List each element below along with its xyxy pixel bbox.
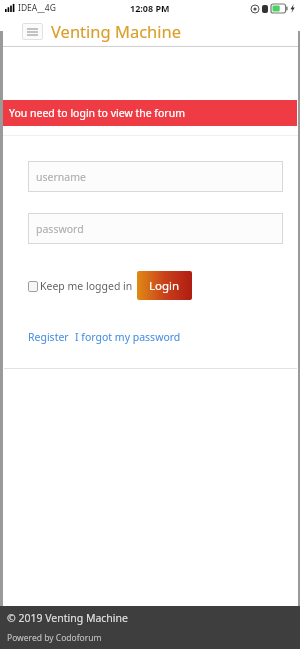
staticText: username [36, 170, 86, 184]
button[interactable]: I forgot my password [75, 330, 181, 344]
button[interactable]: password [28, 213, 283, 244]
staticText: password [36, 222, 84, 236]
button[interactable]: Register [28, 330, 69, 344]
staticText: Register [28, 330, 69, 344]
button[interactable]: username [28, 161, 283, 192]
button[interactable]: Login [137, 271, 192, 300]
button[interactable]: Keep me logged in [28, 279, 133, 293]
button[interactable]: You need to login to view the forum [3, 100, 297, 126]
staticText: © 2019 Venting Machine [7, 611, 128, 625]
staticText: IDEA__4G [18, 2, 56, 14]
staticText: Login [149, 278, 180, 294]
staticText: Powered by Codoforum [7, 632, 102, 644]
staticText: 12:08 PM [130, 2, 170, 14]
staticText: Venting Machine [51, 20, 182, 42]
staticText: You need to login to view the forum [9, 106, 185, 120]
button[interactable]: Menu [22, 23, 43, 40]
staticText: Keep me logged in [40, 279, 133, 293]
staticText: I forgot my password [75, 330, 181, 344]
